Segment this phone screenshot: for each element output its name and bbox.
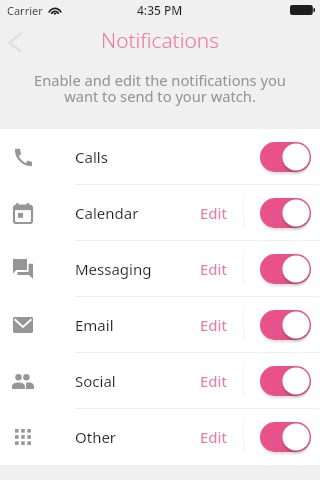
button[interactable]: Toggle: [260, 363, 311, 399]
staticText: Enable and edit the notifications you wa…: [0, 70, 320, 106]
button[interactable]: Edit: [194, 419, 233, 455]
button[interactable]: Calls: [0, 129, 320, 185]
button[interactable]: Edit: [194, 195, 233, 231]
button[interactable]: Email: [0, 297, 320, 353]
staticText: Notifications: [101, 26, 219, 54]
staticText: Edit: [200, 203, 227, 223]
staticText: Other: [75, 427, 117, 447]
button[interactable]: Back: [0, 24, 34, 58]
button[interactable]: Edit: [194, 251, 233, 287]
button[interactable]: Social: [0, 353, 320, 409]
staticText: 4:35 PM: [137, 2, 183, 18]
button[interactable]: Messaging: [0, 241, 320, 297]
button[interactable]: Edit: [194, 307, 233, 343]
button[interactable]: Calendar: [0, 185, 320, 241]
button[interactable]: Toggle: [260, 251, 311, 287]
staticText: Carrier: [7, 3, 43, 18]
button[interactable]: Toggle: [260, 419, 311, 455]
button[interactable]: Edit: [194, 363, 233, 399]
button[interactable]: Other: [0, 409, 320, 465]
staticText: Edit: [200, 371, 227, 391]
staticText: Messaging: [75, 259, 152, 279]
button[interactable]: Toggle: [260, 195, 311, 231]
staticText: Edit: [200, 315, 227, 335]
staticText: Calls: [75, 147, 108, 167]
staticText: Edit: [200, 427, 227, 447]
button[interactable]: Toggle: [260, 139, 311, 175]
button[interactable]: Toggle: [260, 307, 311, 343]
staticText: Calendar: [75, 203, 139, 223]
staticText: Social: [75, 371, 116, 391]
staticText: Email: [75, 315, 114, 335]
staticText: Edit: [200, 259, 227, 279]
